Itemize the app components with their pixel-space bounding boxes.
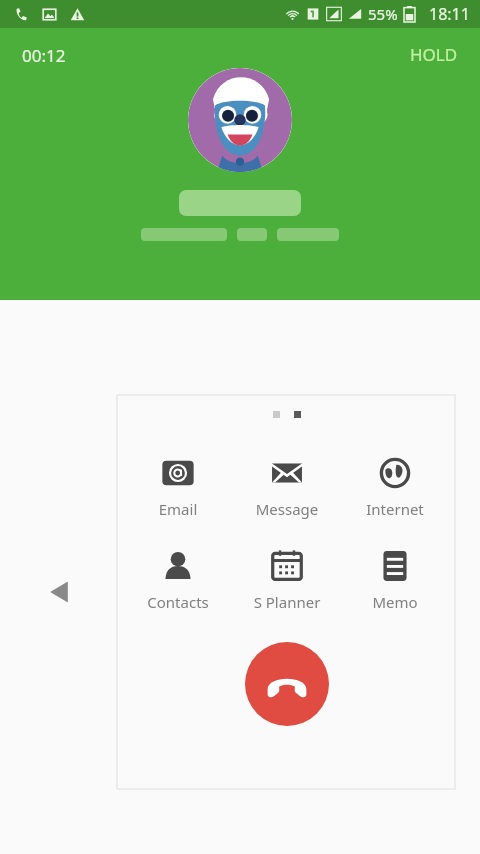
staticText: Email	[130, 499, 226, 519]
staticText: HOLD	[410, 43, 458, 66]
button[interactable]: End call	[245, 642, 329, 726]
staticText: 18:11	[429, 3, 470, 25]
staticText: 00:12	[22, 44, 66, 67]
button[interactable]: S Planner	[239, 545, 335, 616]
button[interactable]: Previous page	[33, 566, 85, 618]
button[interactable]: Email	[130, 452, 226, 523]
button[interactable]: Contacts	[130, 545, 226, 616]
staticText: Internet	[347, 499, 443, 519]
staticText: Memo	[347, 592, 443, 612]
staticText: 55%	[368, 4, 398, 24]
staticText: Message	[239, 499, 335, 519]
other: Caller photo	[188, 68, 292, 172]
staticText: Contacts	[130, 592, 226, 612]
button[interactable]: Memo	[347, 545, 443, 616]
button[interactable]: Message	[239, 452, 335, 523]
staticText: S Planner	[239, 592, 335, 612]
button[interactable]: HOLD	[406, 40, 462, 69]
button[interactable]: Internet	[347, 452, 443, 523]
